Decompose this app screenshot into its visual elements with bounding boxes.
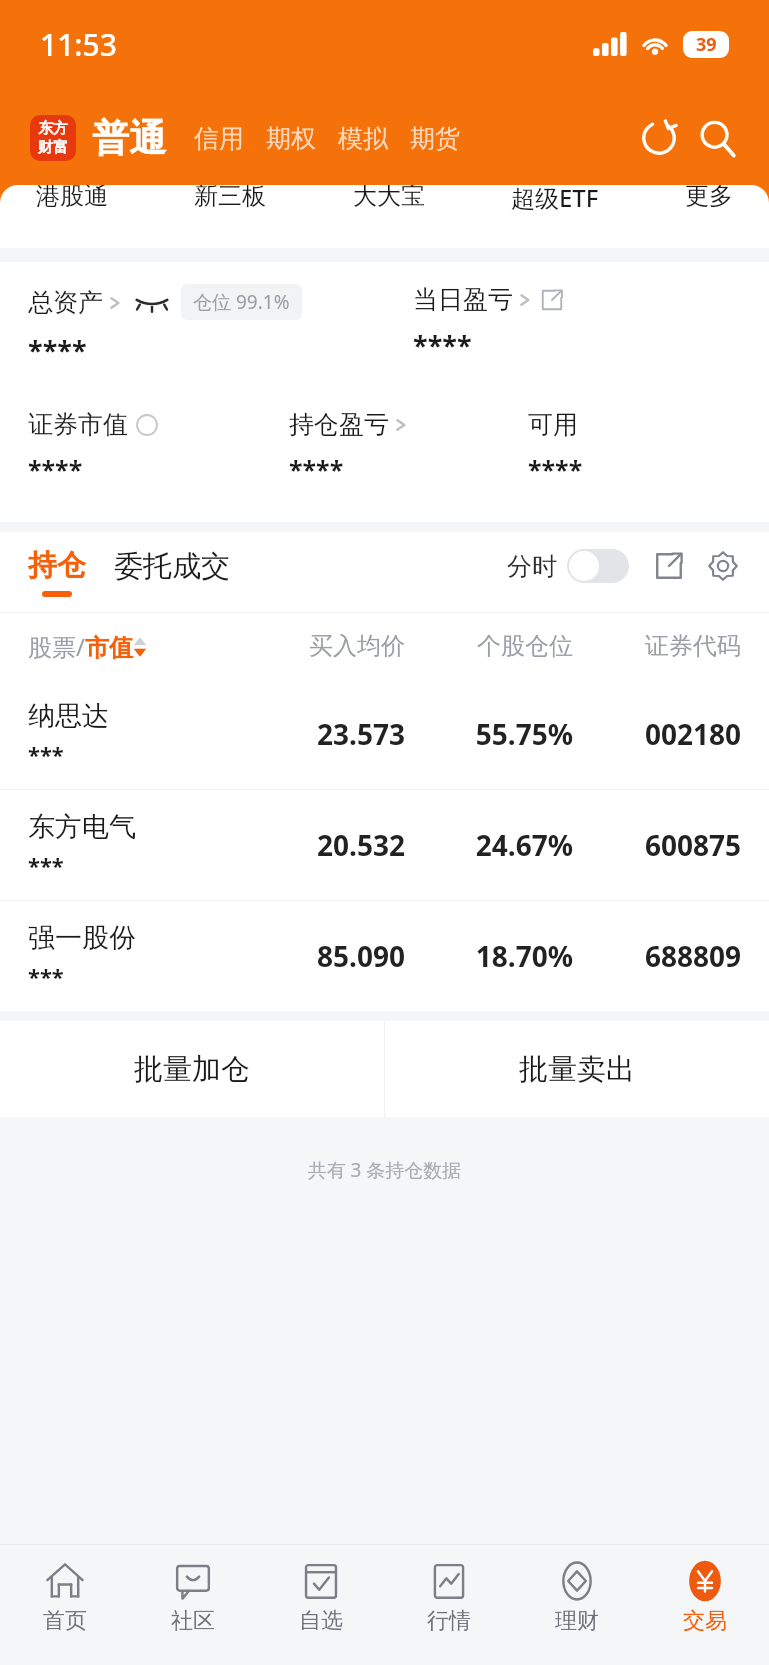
staticText: 自选 xyxy=(299,1607,343,1635)
button[interactable]: 大大宝 xyxy=(343,185,435,215)
staticText: 纳思达 xyxy=(28,699,109,733)
button[interactable]: 强一股份 xyxy=(0,901,769,1011)
button[interactable]: 东方电气 xyxy=(0,790,769,900)
staticText: 东方电气 xyxy=(28,810,136,844)
staticText: 仓位 99.1% xyxy=(193,289,290,315)
button[interactable]: 更多 xyxy=(675,185,743,215)
staticText: 24.67% xyxy=(405,826,573,864)
staticText: 财富 xyxy=(38,138,68,157)
staticText: 模拟 xyxy=(338,123,388,154)
staticText: 委托成交 xyxy=(114,548,230,585)
button[interactable]: 总资产 xyxy=(28,287,121,318)
staticText: 理财 xyxy=(555,1607,599,1635)
staticText: 股票/市值 xyxy=(28,630,133,663)
button[interactable]: Settings xyxy=(703,546,743,586)
button[interactable]: 持仓盈亏 xyxy=(289,409,407,440)
button[interactable]: Refresh xyxy=(635,114,683,162)
staticText: *** xyxy=(28,961,64,991)
staticText: 期权 xyxy=(266,123,316,154)
staticText: 证券市值 xyxy=(28,409,128,440)
staticText: 持仓盈亏 xyxy=(289,409,389,440)
staticText: 港股通 xyxy=(36,185,108,211)
staticText: 持仓 xyxy=(28,547,86,584)
staticText: 行情 xyxy=(427,1607,471,1635)
staticText: 85.090 xyxy=(237,937,405,975)
staticText: **** xyxy=(289,452,344,486)
button[interactable]: 超级ETF xyxy=(501,185,609,218)
staticText: 交易 xyxy=(683,1607,727,1635)
button[interactable]: 委托成交 xyxy=(114,554,230,591)
staticText: 新三板 xyxy=(194,185,266,211)
button[interactable]: 交易 xyxy=(641,1545,769,1665)
button[interactable]: 新三板 xyxy=(184,185,276,215)
staticText: 普通 xyxy=(92,115,166,162)
button[interactable]: 首页 xyxy=(0,1545,129,1665)
staticText: 强一股份 xyxy=(28,921,136,955)
button[interactable]: 批量加仓 xyxy=(0,1021,384,1117)
button[interactable]: Expand xyxy=(649,546,689,586)
button[interactable]: 仓位 99.1% xyxy=(181,284,302,320)
staticText: 总资产 xyxy=(28,287,103,318)
staticText: 东方 xyxy=(38,119,68,138)
button[interactable]: Toggle visibility xyxy=(135,291,169,313)
staticText: **** xyxy=(413,327,472,364)
staticText: 社区 xyxy=(171,1607,215,1635)
staticText: 批量卖出 xyxy=(519,1051,635,1088)
staticText: 11:53 xyxy=(40,24,117,65)
staticText: **** xyxy=(528,452,583,486)
button[interactable]: 自选 xyxy=(257,1545,385,1665)
staticText: 期货 xyxy=(410,123,460,154)
button[interactable]: Search xyxy=(693,114,741,162)
staticText: **** xyxy=(28,332,87,369)
button[interactable]: 模拟 xyxy=(330,123,396,154)
staticText: 信用 xyxy=(194,123,244,154)
button[interactable]: 港股通 xyxy=(26,185,118,215)
staticText: 证券代码 xyxy=(573,631,741,661)
button[interactable]: 信用 xyxy=(186,123,252,154)
button[interactable]: 普通 xyxy=(92,115,166,162)
button[interactable]: 社区 xyxy=(129,1545,257,1665)
staticText: 超级ETF xyxy=(511,185,599,214)
staticText: *** xyxy=(28,739,64,769)
staticText: 更多 xyxy=(685,185,733,211)
staticText: 可用 xyxy=(528,409,578,440)
staticText: 39 xyxy=(696,32,717,57)
staticText: 共有 3 条持仓数据 xyxy=(0,1157,769,1183)
staticText: 当日盈亏 xyxy=(413,284,513,315)
staticText: 55.75% xyxy=(405,715,573,753)
staticText: 批量加仓 xyxy=(134,1051,250,1088)
staticText: 23.573 xyxy=(237,715,405,753)
staticText: 首页 xyxy=(43,1607,87,1635)
staticText: 18.70% xyxy=(405,937,573,975)
button[interactable]: 持仓 xyxy=(28,547,86,597)
staticText: 002180 xyxy=(573,715,741,753)
button[interactable]: 纳思达 xyxy=(0,679,769,789)
staticText: 688809 xyxy=(573,937,741,975)
button[interactable]: 当日盈亏 xyxy=(413,284,563,315)
staticText: 分时 xyxy=(507,551,557,582)
staticText: *** xyxy=(28,850,64,880)
button[interactable]: 批量卖出 xyxy=(385,1021,769,1117)
button[interactable]: Time-sharing toggle xyxy=(567,549,629,583)
button[interactable]: 期货 xyxy=(402,123,468,154)
staticText: 大大宝 xyxy=(353,185,425,211)
button[interactable]: 股票/市值 xyxy=(28,630,237,663)
staticText: 买入均价 xyxy=(237,631,405,661)
button[interactable]: 理财 xyxy=(513,1545,641,1665)
button[interactable]: 期权 xyxy=(258,123,324,154)
staticText: **** xyxy=(28,452,83,486)
staticText: 20.532 xyxy=(237,826,405,864)
staticText: 个股仓位 xyxy=(405,631,573,661)
button[interactable]: 证券市值 xyxy=(28,409,158,440)
button[interactable]: 行情 xyxy=(385,1545,513,1665)
staticText: 600875 xyxy=(573,826,741,864)
